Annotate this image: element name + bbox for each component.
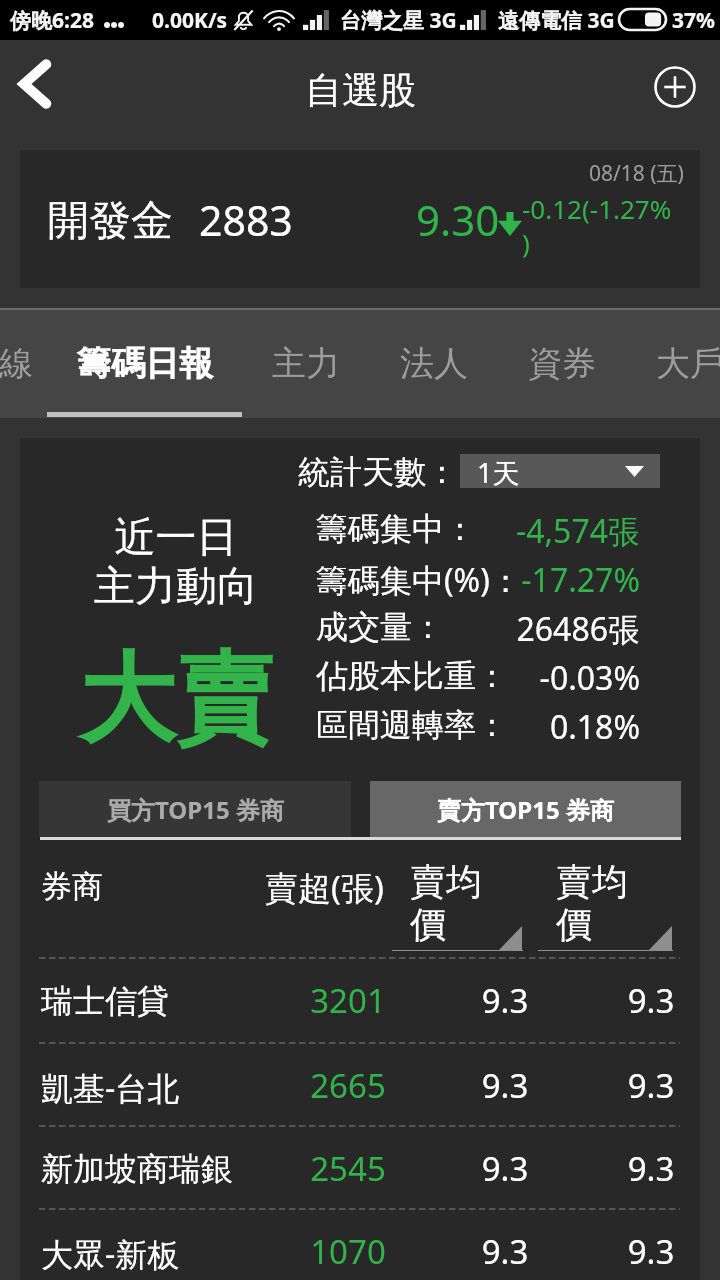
button[interactable]: 08/18 (五) <box>20 150 700 288</box>
staticText: 賣均價 <box>410 859 486 948</box>
button[interactable]: 凱基-台北 <box>20 1042 700 1126</box>
staticText: 賣超(張) <box>265 865 384 910</box>
staticText: 9.3 <box>581 1146 720 1191</box>
staticText: 賣均價 <box>556 859 632 948</box>
button[interactable]: 賣方TOP15 券商 <box>370 781 681 837</box>
staticText: 凱基-台北 <box>41 1066 180 1110</box>
staticText: 大眾-新板 <box>41 1232 180 1276</box>
staticText: 佔股本比重： <box>316 656 508 696</box>
button[interactable]: 買方TOP15 券商 <box>39 781 351 837</box>
staticText: 9.3 <box>435 1229 575 1274</box>
button[interactable]: 賣均價 <box>538 857 673 951</box>
staticText: 26486張 <box>390 607 640 651</box>
staticText: 買方TOP15 券商 <box>107 793 284 826</box>
staticText: 新加坡商瑞銀 <box>41 1149 233 1189</box>
staticText: 2665 <box>278 1063 418 1108</box>
staticText: 2883 <box>199 192 293 248</box>
staticText: -0.12(-1.27%) <box>522 191 678 260</box>
button[interactable]: 大戶 <box>626 308 720 418</box>
staticText: 賣方TOP15 券商 <box>437 793 614 826</box>
staticText: 9.3 <box>435 1146 575 1191</box>
staticText: 瑞士信貸 <box>41 981 169 1021</box>
staticText: 0.18% <box>390 705 640 749</box>
button[interactable]: 大眾-新板 <box>20 1208 700 1280</box>
staticText: 大賣 <box>56 639 296 761</box>
button[interactable]: 新加坡商瑞銀 <box>20 1125 700 1209</box>
staticText: 籌碼集中(%)： <box>316 558 522 602</box>
staticText: 主力 <box>272 342 340 385</box>
staticText: 9.3 <box>435 1063 575 1108</box>
staticText: 9.30 <box>416 191 500 248</box>
staticText: 開發金 <box>47 195 173 248</box>
staticText: 籌碼日報 <box>77 342 213 385</box>
button[interactable]: 瑞士信貸 <box>20 957 700 1041</box>
button[interactable]: 線 <box>0 308 47 418</box>
button[interactable]: 主力 <box>242 308 370 418</box>
staticText: 37% <box>672 6 715 35</box>
staticText: 區間週轉率： <box>316 705 508 745</box>
button[interactable]: 1天 <box>460 454 660 488</box>
button[interactable]: 賣均價 <box>392 857 523 951</box>
staticText: -17.27% <box>390 558 640 602</box>
staticText: 台灣之星 3G <box>340 6 457 35</box>
staticText: 1070 <box>278 1229 418 1274</box>
staticText: 統計天數： <box>298 452 458 492</box>
staticText: 0.00K/s <box>152 6 228 35</box>
staticText: 近一日 <box>56 512 296 564</box>
staticText: 3201 <box>278 978 418 1023</box>
button[interactable]: 資券 <box>498 308 626 418</box>
staticText: -0.03% <box>390 656 640 700</box>
staticText: 9.3 <box>581 1229 720 1274</box>
staticText: 主力動向 <box>56 561 296 613</box>
staticText: 08/18 (五) <box>589 159 684 188</box>
staticText: 2545 <box>278 1146 418 1191</box>
staticText: 遠傳電信 3G <box>498 6 615 35</box>
staticText: 大戶 <box>656 342 720 385</box>
staticText: 資券 <box>528 342 596 385</box>
staticText: 券商 <box>41 867 103 906</box>
staticText: 籌碼集中： <box>316 509 476 549</box>
staticText: -4,574張 <box>390 509 640 553</box>
button[interactable]: 籌碼日報 <box>47 308 242 418</box>
staticText: 法人 <box>400 342 468 385</box>
button[interactable]: Back <box>0 40 80 150</box>
staticText: 自選股 <box>305 67 416 114</box>
staticText: 9.3 <box>581 1063 720 1108</box>
staticText: 傍晚6:28 <box>10 6 94 35</box>
staticText: 成交量： <box>316 607 444 647</box>
staticText: 9.3 <box>581 978 720 1023</box>
staticText: 1天 <box>477 454 520 488</box>
staticText: 9.3 <box>435 978 575 1023</box>
button[interactable]: Add <box>632 40 720 150</box>
staticText: 線 <box>0 342 33 385</box>
button[interactable]: 法人 <box>370 308 498 418</box>
